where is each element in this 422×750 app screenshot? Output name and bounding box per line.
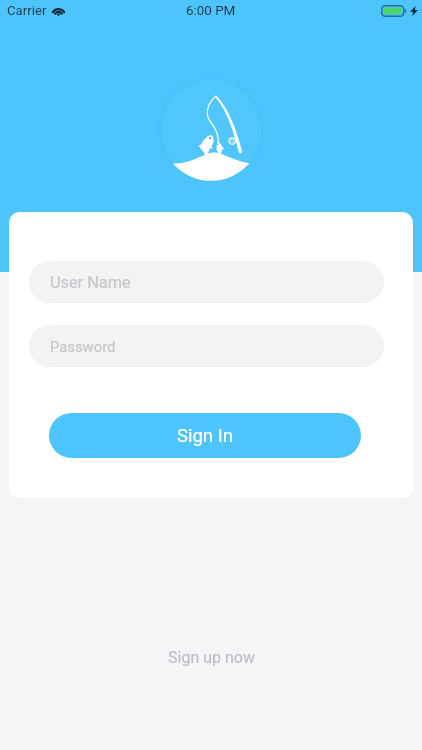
button[interactable]: Password [29, 325, 384, 367]
staticText: Carrier [7, 3, 47, 18]
staticText: Sign In [177, 425, 233, 447]
staticText: Sign up now [168, 648, 255, 667]
staticText: Password [50, 338, 116, 355]
other: Battery charging [381, 5, 408, 17]
other: Wi-Fi signal [51, 5, 66, 16]
button[interactable]: User Name [29, 261, 384, 303]
staticText: User Name [50, 273, 131, 292]
button[interactable]: Sign up now [154, 641, 269, 674]
staticText: 6:00 PM [186, 3, 236, 19]
button[interactable]: Sign In [49, 413, 361, 458]
